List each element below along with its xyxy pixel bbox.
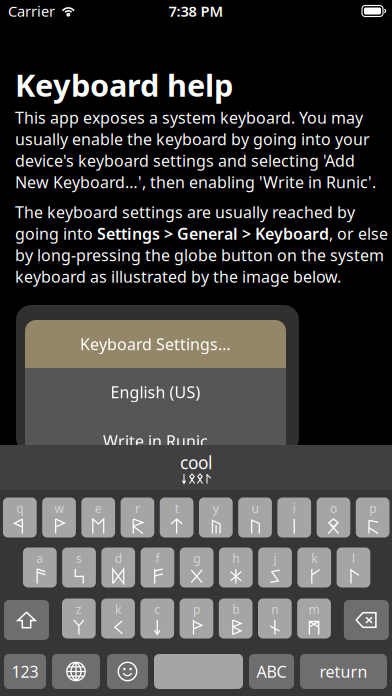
staticText: English (US): [110, 381, 200, 403]
staticText: j: [274, 550, 277, 566]
staticText: w: [55, 500, 64, 516]
button[interactable]: i: [277, 499, 311, 539]
staticText: z: [76, 601, 82, 617]
button[interactable]: p: [356, 499, 389, 539]
button[interactable]: t: [160, 499, 193, 539]
button[interactable]: Emoji: [107, 654, 148, 689]
button[interactable]: q: [3, 499, 37, 539]
button[interactable]: k: [101, 600, 135, 640]
button[interactable]: Shift: [4, 600, 49, 640]
staticText: t: [175, 500, 179, 516]
button[interactable]: k: [297, 549, 331, 589]
button[interactable]: w: [42, 499, 76, 539]
button[interactable]: h: [219, 549, 253, 589]
button[interactable]: c: [140, 600, 174, 640]
button[interactable]: Space: [154, 654, 243, 689]
staticText: q: [16, 500, 23, 516]
staticText: f: [155, 550, 159, 566]
staticText: d: [115, 550, 122, 566]
staticText: Keyboard Settings…: [80, 333, 231, 355]
button[interactable]: ABC: [249, 654, 294, 689]
staticText: p: [369, 500, 376, 516]
button[interactable]: d: [101, 549, 135, 589]
staticText: device's keyboard settings and selecting…: [15, 150, 355, 171]
button[interactable]: z: [62, 600, 96, 640]
button[interactable]: Next keyboard: [52, 654, 100, 689]
button[interactable]: 123: [4, 654, 46, 689]
staticText: b: [232, 601, 239, 617]
staticText: a: [36, 550, 43, 566]
button[interactable]: o: [317, 499, 350, 539]
staticText: k: [115, 601, 121, 617]
button[interactable]: n: [258, 600, 292, 640]
button[interactable]: f: [141, 549, 174, 589]
staticText: c: [154, 601, 160, 617]
staticText: Carrier: [8, 1, 55, 21]
staticText: The keyboard settings are usually reache…: [15, 201, 355, 223]
staticText: o: [330, 500, 337, 516]
staticText: going into Settings > General > Keyboard…: [15, 223, 388, 244]
staticText: u: [252, 500, 259, 516]
staticText: usually enable the keyboard by going int…: [15, 128, 370, 150]
staticText: New Keyboard…', then enabling 'Write in …: [15, 171, 376, 193]
button[interactable]: a: [23, 549, 57, 589]
button[interactable]: r: [121, 499, 154, 539]
button[interactable]: y: [199, 499, 233, 539]
staticText: 7:38 PM: [168, 1, 223, 21]
staticText: 123: [11, 661, 38, 682]
button[interactable]: p: [180, 600, 213, 640]
staticText: g: [193, 550, 200, 566]
staticText: y: [213, 500, 219, 516]
staticText: keyboard as illustrated by the image bel…: [15, 266, 341, 287]
staticText: h: [232, 550, 239, 566]
button[interactable]: e: [81, 499, 115, 539]
staticText: m: [309, 601, 320, 617]
button[interactable]: g: [180, 549, 213, 589]
staticText: i: [293, 500, 296, 516]
button[interactable]: b: [219, 600, 252, 640]
staticText: ABC: [256, 661, 286, 682]
staticText: e: [95, 500, 102, 516]
staticText: Keyboard help: [15, 64, 233, 105]
button[interactable]: return: [300, 654, 387, 689]
staticText: l: [352, 550, 355, 566]
button[interactable]: Delete: [344, 600, 389, 640]
staticText: This app exposes a system keyboard. You …: [15, 107, 363, 128]
staticText: Write in Runic: [103, 430, 208, 452]
button[interactable]: s: [62, 549, 96, 589]
button[interactable]: u: [238, 499, 272, 539]
staticText: s: [76, 550, 82, 566]
button[interactable]: m: [297, 600, 331, 640]
staticText: r: [135, 500, 140, 516]
staticText: k: [311, 550, 317, 566]
staticText: n: [271, 601, 278, 617]
button[interactable]: l: [337, 549, 370, 589]
staticText: p: [193, 601, 200, 617]
staticText: by long-pressing the globe button on the…: [15, 244, 384, 266]
staticText: return: [319, 661, 367, 682]
button[interactable]: j: [258, 549, 292, 589]
staticText: cool: [180, 451, 212, 474]
